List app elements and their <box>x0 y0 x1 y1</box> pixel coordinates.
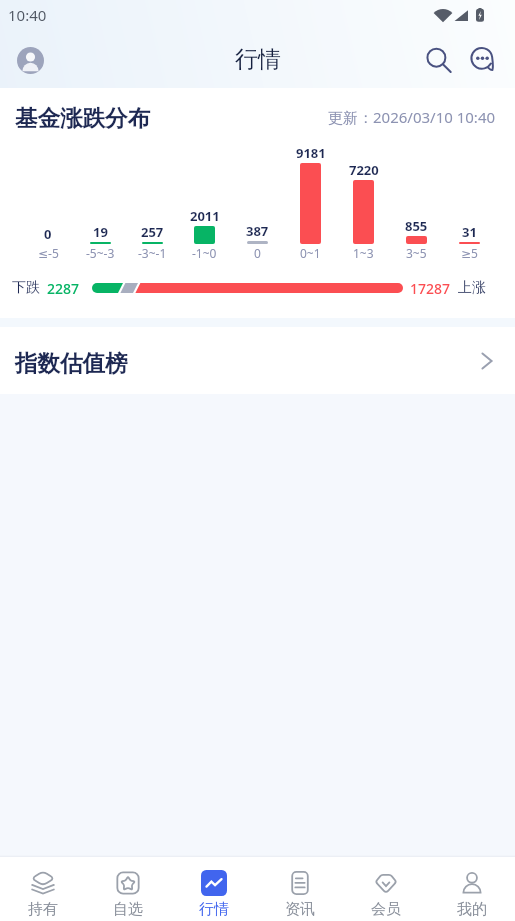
staticText: 上涨 <box>458 279 486 297</box>
button[interactable]: Profile <box>17 47 44 74</box>
staticText: 10:40 <box>8 5 47 25</box>
staticText: 7220 <box>349 161 379 179</box>
staticText: 资讯 <box>285 900 315 919</box>
staticText: 0 <box>254 245 261 261</box>
staticText: 行情 <box>235 45 281 74</box>
staticText: 0~1 <box>300 245 321 261</box>
staticText: 2011 <box>190 207 220 225</box>
button[interactable]: 资讯 <box>257 859 343 919</box>
staticText: 2287 <box>47 279 80 298</box>
staticText: -1~0 <box>192 245 217 261</box>
staticText: 基金涨跌分布 <box>15 104 150 132</box>
staticText: 0 <box>44 225 52 243</box>
staticText: 31 <box>462 223 477 241</box>
staticText: ≥5 <box>461 245 478 261</box>
staticText: ≤-5 <box>38 245 59 261</box>
staticText: 持有 <box>28 900 58 919</box>
staticText: 我的 <box>457 900 487 919</box>
staticText: -3~-1 <box>138 245 167 261</box>
staticText: 387 <box>246 222 269 240</box>
button[interactable]: 会员 <box>343 859 429 919</box>
button[interactable]: 自选 <box>85 859 171 919</box>
staticText: 257 <box>141 223 164 241</box>
staticText: 19 <box>93 223 108 241</box>
button[interactable]: Search <box>417 38 461 82</box>
button[interactable]: 我的 <box>429 859 515 919</box>
button[interactable]: 指数估值榜 <box>0 327 515 394</box>
button[interactable]: 行情 <box>171 859 257 919</box>
staticText: 855 <box>405 217 428 235</box>
staticText: 3~5 <box>406 245 427 261</box>
staticText: 1~3 <box>353 245 374 261</box>
staticText: 下跌 <box>12 279 40 297</box>
staticText: 更新：2026/03/10 10:40 <box>328 107 496 127</box>
staticText: -5~-3 <box>86 245 115 261</box>
button[interactable]: 持有 <box>0 859 85 919</box>
staticText: 会员 <box>371 900 401 919</box>
staticText: 指数估值榜 <box>15 349 128 377</box>
staticText: 17287 <box>410 279 451 298</box>
button[interactable]: Messages <box>461 38 505 82</box>
staticText: 自选 <box>113 900 143 919</box>
staticText: 行情 <box>199 900 229 919</box>
staticText: 9181 <box>296 144 326 162</box>
